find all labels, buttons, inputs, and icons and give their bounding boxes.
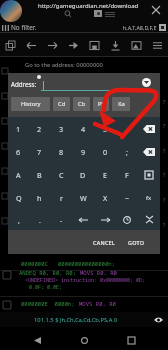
staticText: F — [125, 170, 129, 180]
button[interactable]: C — [50, 163, 72, 186]
staticText: W — [80, 193, 87, 203]
button[interactable]: , — [8, 209, 29, 230]
button[interactable]: B — [29, 163, 50, 186]
staticText: 0.0F; 0.0E; — [29, 284, 63, 291]
button[interactable]: PS — [93, 97, 109, 111]
button[interactable]: 5 — [94, 117, 116, 140]
staticText: Q — [16, 193, 22, 203]
button[interactable]: . — [29, 209, 50, 230]
button[interactable]: Account — [0, 0, 22, 22]
button[interactable]: Cd — [53, 97, 70, 111]
staticText: 7 — [37, 147, 42, 157]
button[interactable]: Back — [27, 330, 47, 350]
staticText: 101.1.5 $ Jh,Ch,Ca,Cd,Cb,PS,A 0 — [34, 316, 118, 324]
button[interactable]: 4 — [72, 117, 94, 140]
staticText: GOTO — [128, 239, 145, 246]
button[interactable] — [116, 117, 138, 140]
staticText: CANCEL — [93, 239, 115, 246]
button[interactable]: A — [8, 163, 29, 186]
staticText: A — [16, 170, 21, 180]
button[interactable]: - — [50, 209, 72, 230]
staticText: X — [103, 193, 108, 203]
button[interactable]: h — [29, 186, 50, 209]
button[interactable]: CANCEL — [89, 235, 119, 250]
staticText: 9 — [81, 147, 86, 157]
button[interactable]: Cb — [73, 97, 90, 111]
staticText: . — [39, 215, 41, 225]
staticText: D — [80, 170, 86, 180]
button[interactable]: Copy — [0, 33, 21, 57]
button[interactable]: Close tab — [148, 2, 164, 18]
button[interactable]: GOTO — [124, 235, 149, 250]
button[interactable]: Show values — [152, 314, 164, 326]
button[interactable] — [138, 163, 160, 186]
button[interactable]: X — [94, 186, 116, 209]
button[interactable] — [138, 209, 160, 230]
staticText: Cb — [78, 100, 86, 108]
button[interactable]: 6 — [8, 140, 29, 163]
button[interactable]: Go — [63, 33, 84, 57]
staticText: 4 — [81, 124, 86, 134]
staticText: <UNDEFINED> instruction: 0x00000000; 0D; — [25, 277, 146, 284]
button[interactable] — [138, 140, 160, 163]
button[interactable] — [72, 209, 94, 230]
staticText: ? — [163, 221, 166, 228]
button[interactable]: History — [11, 97, 50, 111]
button[interactable]: fx — [138, 186, 160, 209]
button[interactable]: ; — [116, 140, 138, 163]
button[interactable]: Recent apps — [121, 330, 141, 350]
staticText: ? — [163, 171, 166, 178]
staticText: 3 — [59, 124, 64, 134]
button[interactable]: Q — [8, 186, 29, 209]
button[interactable]: r — [50, 186, 72, 209]
button[interactable]: Xa — [112, 97, 130, 111]
staticText: ? — [163, 196, 166, 203]
button[interactable]: Search — [64, 10, 72, 18]
button[interactable]: D — [72, 163, 94, 186]
staticText: Xa — [118, 100, 125, 108]
staticText: E — [103, 170, 107, 180]
button[interactable]: Download — [105, 33, 126, 57]
button[interactable]: History dropdown — [142, 78, 151, 87]
button[interactable] — [116, 209, 138, 230]
button[interactable] — [138, 117, 160, 140]
button[interactable]: Home — [74, 330, 94, 350]
button[interactable]: 1 — [8, 117, 29, 140]
button[interactable]: F — [116, 163, 138, 186]
staticText: 0 — [103, 147, 108, 157]
staticText: 8 — [59, 147, 64, 157]
staticText: No filter. — [11, 23, 37, 32]
staticText: Address: — [11, 80, 37, 88]
button[interactable]: 8 — [50, 140, 72, 163]
staticText: r — [60, 193, 63, 203]
staticText: ANDEQ R0, R0, R0; — [19, 269, 80, 277]
staticText: - — [60, 215, 63, 225]
button[interactable]: Menu — [147, 33, 168, 57]
staticText: h — [37, 193, 42, 203]
button[interactable]: ~ — [116, 186, 138, 209]
staticText: MOVS R0, R0 — [79, 300, 116, 308]
staticText: ~ — [125, 193, 130, 203]
button[interactable]: 0 — [94, 140, 116, 163]
button[interactable]: 3 — [50, 117, 72, 140]
button[interactable]: Image — [126, 33, 147, 57]
staticText: ? — [163, 147, 166, 154]
button[interactable]: Save — [84, 33, 105, 57]
button[interactable]: 7 — [29, 140, 50, 163]
button[interactable]: W — [72, 186, 94, 209]
button[interactable]: Forward — [42, 33, 63, 57]
button[interactable]: 2 — [29, 117, 50, 140]
staticText: 0000000E 0000h; — [21, 300, 79, 308]
staticText: ? — [163, 122, 166, 129]
button[interactable] — [94, 209, 116, 230]
staticText: B — [37, 170, 42, 180]
staticText: C — [59, 170, 64, 180]
staticText: Go to the address: 00000000 — [25, 61, 103, 69]
staticText: Cd — [58, 100, 66, 108]
staticText: PS — [98, 100, 105, 108]
staticText: h,A,T,A8,D,F,E — [123, 24, 157, 31]
staticText: http://gameguardian.net/download — [38, 2, 139, 10]
button[interactable]: 9 — [72, 140, 94, 163]
button[interactable]: Back — [21, 33, 42, 57]
button[interactable]: E — [94, 163, 116, 186]
